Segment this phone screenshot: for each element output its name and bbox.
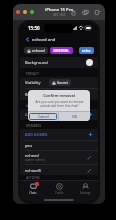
staticText: :: [75, 48, 77, 53]
button[interactable]: Profile: [46, 181, 72, 197]
staticText: Chats: [29, 191, 37, 195]
staticText: PRIVACY: [26, 72, 39, 76]
staticText: Cancel: [38, 114, 49, 119]
button[interactable]: Edit echoed5: [86, 167, 93, 174]
button[interactable]: DISMISS: [46, 91, 67, 98]
button[interactable]: Close: [16, 10, 20, 14]
staticText: 15:50: [28, 25, 40, 31]
button[interactable]: Secret: [49, 79, 71, 86]
button[interactable]: ADD MEMBER: [20, 109, 98, 120]
staticText: Visibility: [25, 80, 41, 85]
button[interactable]: Reveal: [20, 89, 98, 100]
staticText: ADD ADMIN: [25, 132, 48, 137]
button[interactable]: OK: [59, 112, 90, 121]
button[interactable]: Settings: [72, 181, 98, 197]
button[interactable]: Zoom: [30, 10, 34, 14]
button[interactable]: echoed and 0x8f3441: [79, 47, 94, 54]
button[interactable]: Minimise: [23, 10, 27, 14]
staticText: you: [25, 143, 32, 148]
staticText: ACTIONS: [26, 176, 40, 180]
button[interactable]: More options: [94, 9, 101, 16]
staticText: Background: [25, 60, 48, 65]
staticText: Settings: [80, 191, 91, 195]
staticText: OK: [72, 114, 77, 119]
staticText: ADD MEMBERS: [26, 104, 49, 108]
staticText: echoed and 0x8f3441bf4137956d9508…: [32, 37, 92, 43]
button[interactable]: echoed: [24, 47, 48, 54]
button[interactable]: Visibility: [20, 77, 98, 88]
button[interactable]: echoed5: [20, 165, 98, 175]
button[interactable]: ADD ADMIN: [20, 129, 98, 140]
button[interactable]: Back: [23, 35, 32, 44]
button[interactable]: Chats: [20, 181, 46, 197]
staticText: Profile: [55, 191, 64, 195]
staticText: Reveal: [25, 92, 38, 97]
staticText: iPhone 15 Pro: [45, 7, 73, 13]
staticText: Secret: [57, 80, 68, 85]
button[interactable]: Screenshot: [82, 9, 89, 16]
staticText: DISMISS: [49, 92, 64, 97]
staticText: echoed: [32, 48, 45, 53]
button[interactable]: Lock rotation: [70, 9, 77, 16]
button[interactable]: Background: [20, 57, 98, 68]
button[interactable]: GENERAL: [50, 47, 73, 54]
button[interactable]: Edit echoed: [86, 154, 93, 161]
button[interactable]: you: [20, 141, 98, 150]
staticText: echoed: [25, 153, 39, 158]
staticText: owner admin: [25, 158, 45, 162]
staticText: ADD MEMBER: [25, 112, 51, 117]
button[interactable]: Cancel: [28, 112, 58, 121]
staticText: MEMBERS: [26, 124, 42, 128]
staticText: Confirm removal: [43, 93, 75, 98]
staticText: echoed5: [25, 168, 42, 173]
staticText: iOS 18.0: [53, 13, 66, 17]
button[interactable]: echoed: [20, 151, 98, 164]
staticText: Are you sure you want to remove pubcat-a…: [35, 100, 84, 108]
staticText: GENERAL: [53, 48, 70, 53]
staticText: echoed and 0x8f3441: [82, 48, 91, 53]
